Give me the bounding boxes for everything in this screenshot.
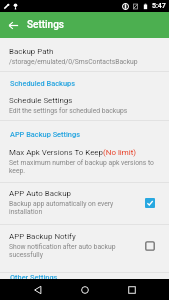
staticText: /storage/emulated/0/SmsContactsBackup bbox=[9, 58, 138, 66]
staticText: Scheduled Backups bbox=[10, 79, 75, 88]
staticText: Set maximum number of backup apk version… bbox=[9, 159, 155, 175]
button[interactable]: Recent apps bbox=[118, 279, 145, 300]
staticText: 5:47 bbox=[152, 2, 166, 10]
staticText: Show notification after auto backup suce… bbox=[9, 243, 117, 259]
button[interactable]: APP Backup Notify bbox=[0, 225, 169, 272]
staticText: APP Auto Backup bbox=[9, 189, 71, 198]
button[interactable]: Navigate up bbox=[0, 12, 26, 38]
button[interactable]: Max Apk Versions To Keep(No limit) bbox=[0, 142, 169, 182]
staticText: APP Backup Notify bbox=[9, 232, 76, 241]
button[interactable]: Backup Path bbox=[0, 42, 169, 71]
staticText: APP Backup Settings bbox=[10, 130, 80, 139]
button[interactable]: Back bbox=[24, 279, 51, 300]
button[interactable]: Scheduled Backups bbox=[0, 72, 169, 91]
staticText: Backup Path bbox=[9, 47, 54, 56]
staticText: Schedule Settings bbox=[9, 96, 73, 105]
staticText: Backup app automatically on every instal… bbox=[9, 200, 117, 216]
button[interactable]: Schedule Settings bbox=[0, 91, 169, 120]
button[interactable]: Home bbox=[71, 279, 98, 300]
staticText: Other Settings bbox=[10, 273, 58, 279]
button[interactable]: Other Settings bbox=[0, 273, 169, 279]
staticText: Settings bbox=[27, 19, 65, 31]
staticText: Edit the settings for scheduled backups bbox=[9, 107, 128, 115]
button[interactable]: APP Backup Settings bbox=[0, 121, 169, 142]
staticText: Max Apk Versions To Keep(No limit) bbox=[9, 148, 136, 157]
button[interactable]: APP Auto Backup bbox=[0, 183, 169, 224]
